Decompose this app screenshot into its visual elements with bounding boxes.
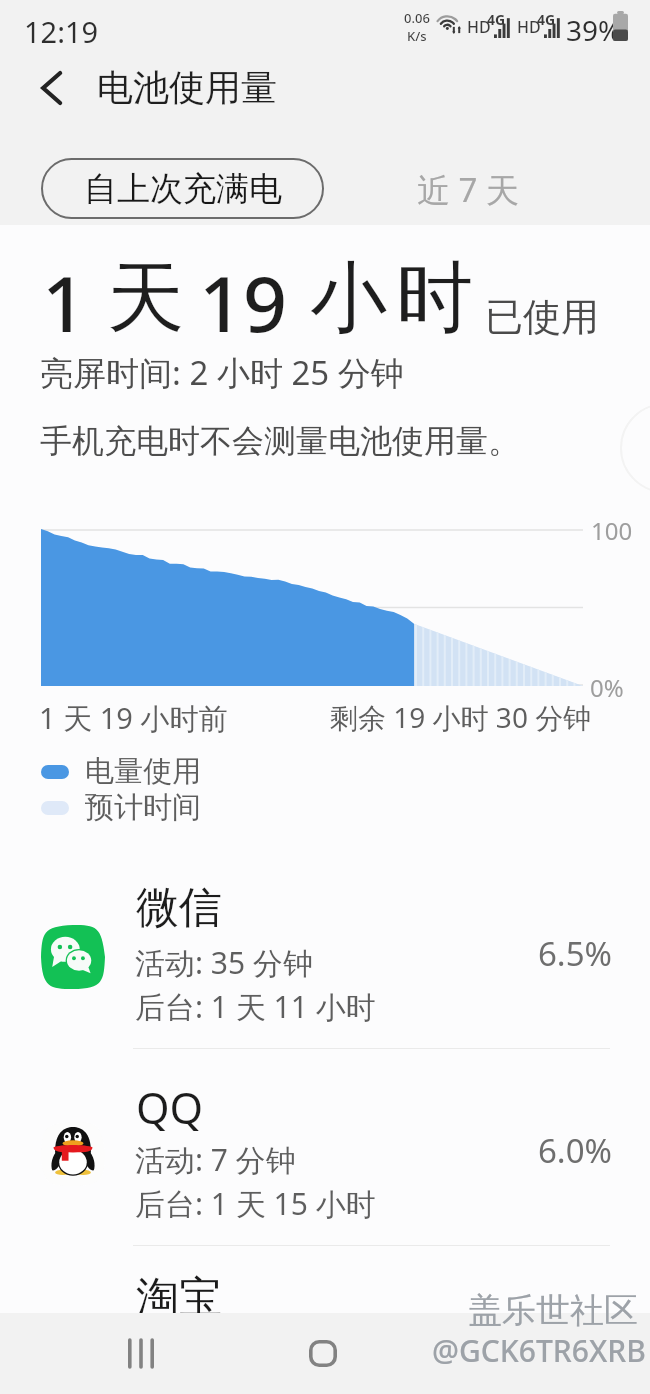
staticText: 后台: 1 天 15 小时 bbox=[135, 1183, 376, 1224]
staticText: 6.5% bbox=[501, 931, 612, 976]
staticText: @GCK6TR6XRB bbox=[432, 1330, 646, 1371]
staticText: 39% bbox=[566, 11, 622, 49]
staticText: 近 7 天 bbox=[417, 167, 520, 212]
staticText: 天 bbox=[107, 250, 184, 347]
staticText: 电池使用量 bbox=[97, 65, 277, 110]
button[interactable]: 近 7 天 bbox=[417, 167, 520, 212]
button[interactable]: Back bbox=[23, 59, 81, 117]
staticText: 淘宝 bbox=[136, 1271, 222, 1325]
staticText: 0.06 bbox=[404, 9, 430, 27]
staticText: 0% bbox=[590, 671, 624, 704]
staticText: 4G bbox=[537, 10, 556, 29]
staticText: 1 bbox=[42, 250, 87, 355]
staticText: 活动: 7 分钟 bbox=[135, 1139, 296, 1180]
button[interactable]: Recents bbox=[99, 1313, 183, 1394]
staticText: 剩余 19 小时 30 分钟 bbox=[330, 698, 592, 736]
staticText: 自上次充满电 bbox=[84, 168, 282, 210]
button[interactable]: Home bbox=[281, 1313, 365, 1394]
staticText: 6.0% bbox=[501, 1128, 612, 1173]
staticText: 12:19 bbox=[24, 12, 99, 51]
staticText: HD bbox=[517, 16, 541, 38]
button[interactable]: QQ bbox=[0, 1075, 650, 1247]
staticText: 后台: 1 天 11 小时 bbox=[135, 986, 376, 1027]
staticText: 微信 bbox=[136, 881, 222, 935]
staticText: 小 bbox=[310, 250, 387, 347]
staticText: 时 bbox=[396, 250, 473, 347]
staticText: HD bbox=[467, 16, 491, 38]
staticText: 盖乐世社区 bbox=[468, 1289, 638, 1332]
button[interactable]: Back bbox=[463, 1313, 547, 1394]
staticText: 电量使用 bbox=[85, 753, 201, 790]
staticText: 活动: 35 分钟 bbox=[135, 942, 313, 983]
staticText: 4G bbox=[487, 10, 506, 29]
staticText: 预计时间 bbox=[85, 789, 201, 826]
button[interactable]: 微信 bbox=[0, 878, 650, 1050]
staticText: K/s bbox=[407, 27, 427, 45]
staticText: 1 天 19 小时前 bbox=[39, 698, 228, 738]
staticText: 100 bbox=[591, 514, 633, 547]
staticText: 亮屏时间: 2 小时 25 分钟 bbox=[40, 350, 404, 395]
staticText: QQ bbox=[136, 1078, 204, 1137]
button[interactable]: 自上次充满电 bbox=[41, 158, 324, 219]
staticText: 手机充电时不会测量电池使用量。 bbox=[40, 421, 520, 461]
staticText: 19 bbox=[199, 250, 288, 355]
staticText: 已使用 bbox=[485, 293, 599, 341]
